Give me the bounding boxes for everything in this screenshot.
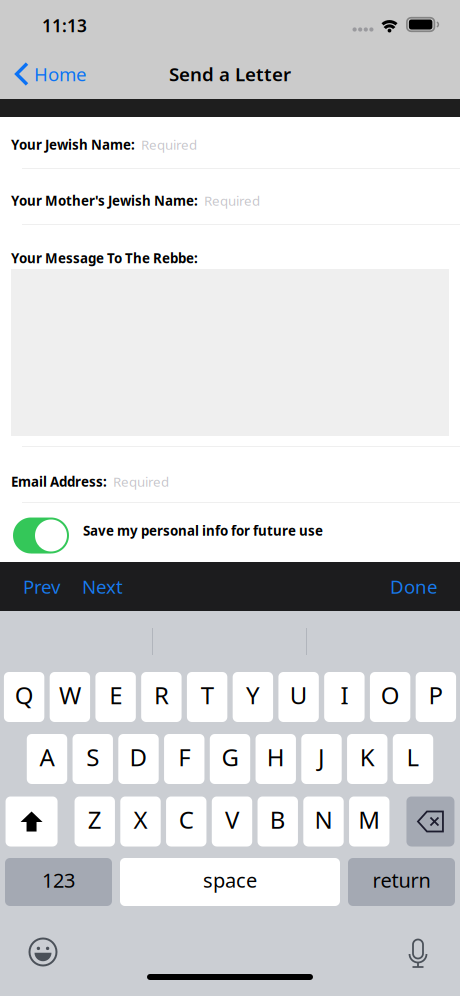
button[interactable]: A bbox=[27, 734, 67, 784]
staticText: K bbox=[360, 741, 375, 773]
staticText: 11:13 bbox=[42, 14, 87, 37]
button[interactable]: Dictate bbox=[401, 936, 435, 970]
staticText: 123 bbox=[42, 867, 75, 893]
button[interactable]: X bbox=[120, 796, 161, 846]
staticText: Your Message To The Rebbe: bbox=[11, 249, 198, 267]
button[interactable]: R bbox=[141, 672, 182, 722]
button[interactable]: P bbox=[416, 672, 456, 722]
staticText: P bbox=[428, 679, 443, 711]
staticText: H bbox=[267, 741, 285, 773]
staticText: Z bbox=[88, 804, 102, 835]
staticText: Y bbox=[246, 679, 260, 711]
staticText: A bbox=[39, 741, 54, 773]
button[interactable]: Next bbox=[71, 562, 134, 611]
button[interactable]: Shift bbox=[5, 796, 57, 846]
button[interactable]: V bbox=[212, 796, 252, 846]
button[interactable]: Prev bbox=[12, 562, 71, 611]
staticText: Required bbox=[113, 473, 169, 490]
button[interactable]: T bbox=[187, 672, 227, 722]
button[interactable]: W bbox=[50, 672, 90, 722]
staticText: J bbox=[318, 741, 325, 773]
staticText: V bbox=[225, 804, 239, 835]
staticText: Your Mother's Jewish Name: bbox=[11, 192, 198, 209]
staticText: Email Address: bbox=[11, 473, 107, 490]
button[interactable]: I bbox=[324, 672, 365, 722]
staticText: Save my personal info for future use bbox=[83, 522, 323, 539]
staticText: I bbox=[340, 679, 348, 711]
button[interactable]: Emoji bbox=[26, 937, 60, 969]
staticText: Next bbox=[82, 574, 123, 599]
button[interactable]: O bbox=[370, 672, 410, 722]
button[interactable]: H bbox=[256, 734, 296, 784]
staticText: R bbox=[154, 679, 169, 711]
button[interactable]: C bbox=[166, 796, 206, 846]
staticText: E bbox=[109, 679, 122, 711]
staticText: Send a Letter bbox=[169, 62, 291, 86]
staticText: N bbox=[314, 804, 332, 835]
staticText: F bbox=[178, 741, 190, 773]
staticText: Your Jewish Name: bbox=[11, 136, 135, 153]
button[interactable]: Y bbox=[233, 672, 273, 722]
button[interactable]: K bbox=[347, 734, 387, 784]
staticText: return bbox=[372, 867, 430, 893]
staticText: Required bbox=[204, 192, 260, 209]
button[interactable]: B bbox=[257, 796, 298, 846]
staticText: U bbox=[290, 679, 308, 711]
staticText: S bbox=[86, 741, 99, 773]
staticText: W bbox=[59, 679, 81, 711]
staticText: D bbox=[129, 741, 147, 773]
button[interactable]: Email Address: bbox=[0, 447, 460, 502]
button[interactable]: Z bbox=[74, 796, 115, 846]
button[interactable]: Your Mother's Jewish Name: bbox=[0, 169, 460, 224]
staticText: T bbox=[201, 679, 214, 711]
button[interactable]: Your Jewish Name: bbox=[0, 113, 460, 168]
staticText: space bbox=[203, 867, 257, 893]
button[interactable]: S bbox=[73, 734, 113, 784]
button[interactable]: N bbox=[303, 796, 344, 846]
button[interactable]: Q bbox=[4, 672, 44, 722]
staticText: M bbox=[358, 804, 380, 835]
button[interactable]: D bbox=[118, 734, 159, 784]
button[interactable]: Your Message To The Rebbe bbox=[0, 269, 460, 436]
staticText: Home bbox=[34, 62, 87, 86]
staticText: Done bbox=[390, 574, 438, 599]
button[interactable]: U bbox=[278, 672, 319, 722]
button[interactable]: return bbox=[348, 858, 455, 906]
staticText: B bbox=[270, 804, 286, 835]
button[interactable]: F bbox=[164, 734, 204, 784]
staticText: G bbox=[221, 741, 238, 773]
staticText: C bbox=[179, 804, 194, 835]
staticText: Required bbox=[141, 136, 197, 153]
button[interactable]: M bbox=[349, 796, 389, 846]
staticText: O bbox=[381, 679, 400, 711]
staticText: L bbox=[406, 741, 419, 773]
button[interactable]: Home bbox=[0, 49, 97, 99]
staticText: Q bbox=[15, 679, 34, 711]
button[interactable]: space bbox=[120, 858, 340, 906]
button[interactable]: E bbox=[95, 672, 136, 722]
staticText: Prev bbox=[23, 574, 60, 599]
button[interactable]: J bbox=[301, 734, 342, 784]
staticText: X bbox=[133, 804, 147, 835]
button[interactable]: L bbox=[393, 734, 433, 784]
button[interactable]: Delete bbox=[406, 796, 454, 846]
button[interactable]: Save my personal info for future use bbox=[0, 503, 460, 558]
button[interactable]: 123 bbox=[5, 858, 112, 906]
button[interactable]: Done bbox=[379, 562, 449, 611]
button[interactable]: G bbox=[210, 734, 250, 784]
